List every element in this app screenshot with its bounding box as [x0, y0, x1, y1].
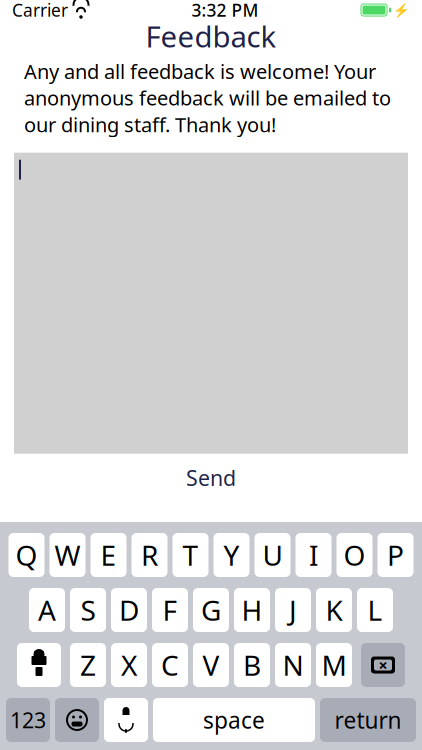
- staticText: Carrier: [12, 0, 68, 21]
- button[interactable]: U: [254, 533, 290, 577]
- staticText: D: [119, 591, 139, 629]
- staticText: 3:32 PM: [191, 0, 258, 21]
- staticText: Feedback: [145, 16, 276, 55]
- button[interactable]: P: [377, 533, 413, 577]
- staticText: B: [243, 646, 261, 684]
- staticText: O: [343, 536, 365, 574]
- staticText: K: [325, 591, 342, 629]
- button[interactable]: W: [49, 533, 85, 577]
- staticText: X: [121, 646, 137, 684]
- button[interactable]: R: [131, 533, 167, 577]
- staticText: P: [387, 536, 404, 574]
- button[interactable]: K: [316, 588, 352, 632]
- staticText: space: [203, 705, 265, 735]
- button[interactable]: N: [275, 643, 311, 687]
- button[interactable]: Q: [8, 533, 44, 577]
- staticText: Q: [15, 536, 37, 574]
- button[interactable]: B: [234, 643, 270, 687]
- staticText: Z: [80, 646, 96, 684]
- button[interactable]: F: [152, 588, 188, 632]
- staticText: F: [162, 591, 177, 629]
- button[interactable]: Delete: [361, 643, 405, 687]
- staticText: Send: [186, 463, 236, 492]
- staticText: 123: [10, 706, 46, 734]
- button[interactable]: M: [316, 643, 352, 687]
- staticText: A: [38, 591, 56, 629]
- staticText: J: [289, 591, 297, 629]
- button[interactable]: Z: [70, 643, 106, 687]
- button[interactable]: 123: [6, 698, 50, 742]
- button[interactable]: Shift: [17, 643, 61, 687]
- staticText: H: [241, 591, 262, 629]
- button[interactable]: V: [193, 643, 229, 687]
- staticText: M: [321, 646, 346, 684]
- button[interactable]: Y: [213, 533, 249, 577]
- staticText: R: [141, 536, 158, 574]
- button[interactable]: X: [111, 643, 147, 687]
- staticText: U: [262, 536, 282, 574]
- button[interactable]: D: [111, 588, 147, 632]
- button[interactable]: C: [152, 643, 188, 687]
- staticText: T: [182, 536, 198, 574]
- button[interactable]: G: [193, 588, 229, 632]
- button[interactable]: return: [320, 698, 416, 742]
- staticText: N: [282, 646, 303, 684]
- staticText: W: [54, 536, 80, 574]
- staticText: ×: [378, 654, 387, 676]
- button[interactable]: Dictate: [104, 698, 148, 742]
- button[interactable]: H: [234, 588, 270, 632]
- staticText: I: [309, 536, 318, 574]
- button[interactable]: O: [336, 533, 372, 577]
- button[interactable]: E: [90, 533, 126, 577]
- staticText: Y: [223, 536, 239, 574]
- staticText: G: [201, 591, 221, 629]
- button[interactable]: space: [153, 698, 315, 742]
- staticText: V: [202, 646, 219, 684]
- button[interactable]: S: [70, 588, 106, 632]
- button[interactable]: L: [357, 588, 393, 632]
- button[interactable]: T: [172, 533, 208, 577]
- staticText: S: [80, 591, 95, 629]
- button[interactable]: Send: [151, 463, 271, 493]
- button[interactable]: J: [275, 588, 311, 632]
- staticText: E: [100, 536, 116, 574]
- staticText: return: [334, 705, 401, 735]
- button[interactable]: Emoji: [55, 698, 99, 742]
- staticText: ⚡: [393, 2, 410, 18]
- button[interactable]: I: [295, 533, 331, 577]
- staticText: Any and all feedback is welcome! Your an…: [24, 58, 391, 138]
- staticText: C: [161, 646, 179, 684]
- button[interactable]: A: [29, 588, 65, 632]
- staticText: L: [367, 591, 382, 629]
